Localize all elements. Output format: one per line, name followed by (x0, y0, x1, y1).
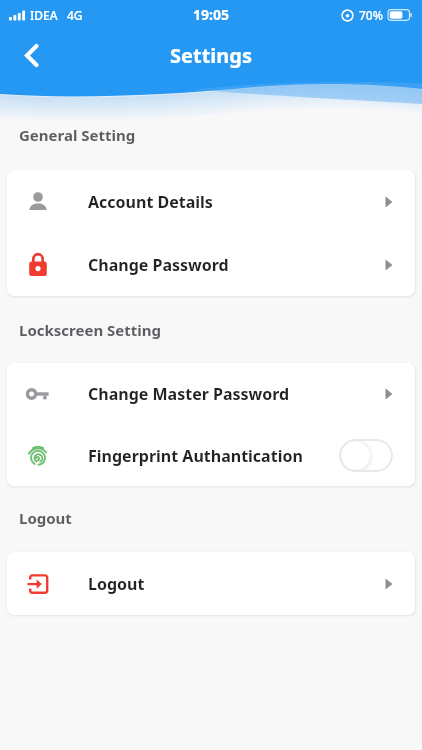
staticText: General Setting (19, 125, 136, 145)
button[interactable]: Change Password (7, 233, 415, 296)
staticText: Lockscreen Setting (19, 320, 161, 340)
button[interactable] (339, 439, 393, 472)
staticText: 19:05 (193, 5, 229, 24)
staticText: Fingerprint Authantication (88, 445, 303, 467)
staticText: Settings (170, 42, 252, 69)
staticText: Account Details (88, 191, 213, 213)
staticText: 4G (67, 7, 83, 23)
staticText: Change Master Password (88, 383, 290, 405)
staticText: Logout (88, 573, 145, 595)
staticText: Logout (19, 508, 72, 528)
staticText: 70% (359, 7, 383, 23)
button[interactable]: Change Master Password (7, 363, 415, 425)
button[interactable]: Fingerprint Authantication (7, 425, 415, 486)
staticText: IDEA (30, 7, 58, 23)
button[interactable]: Logout (7, 552, 415, 615)
button[interactable] (14, 38, 48, 72)
staticText: Change Password (88, 254, 229, 276)
button[interactable]: Account Details (7, 170, 415, 233)
